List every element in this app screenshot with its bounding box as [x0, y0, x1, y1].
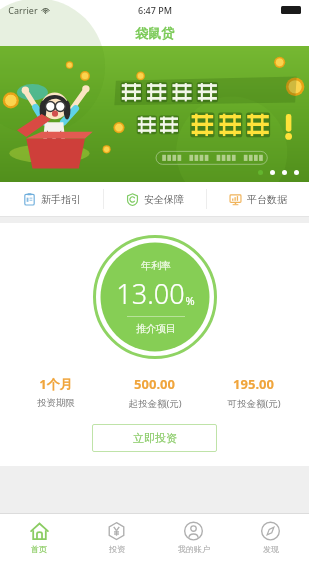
staticText: 500.00 — [134, 375, 175, 393]
staticText: % — [185, 293, 195, 308]
staticText: 我的账户 — [178, 544, 210, 554]
button[interactable]: 发现 — [232, 521, 309, 554]
button[interactable]: 平台数据 — [207, 182, 309, 216]
staticText: 6:47 PM — [138, 4, 172, 16]
button[interactable]: 1个月 — [6, 375, 105, 409]
button[interactable]: 立即投资 — [92, 424, 217, 452]
staticText: 195.00 — [233, 375, 274, 393]
staticText: 首页 — [31, 544, 47, 554]
button[interactable]: 500.00 — [105, 375, 204, 410]
button[interactable]: 195.00 — [204, 375, 303, 410]
staticText: 年利率 — [141, 259, 171, 272]
button[interactable]: 投资 — [78, 521, 155, 554]
button[interactable]: 促销横幅 — [0, 46, 309, 182]
staticText: 袋鼠贷 — [135, 25, 174, 41]
button[interactable]: 新手指引 — [0, 182, 103, 216]
staticText: 投资期限 — [37, 397, 75, 409]
staticText: 13.00 — [116, 275, 185, 312]
button[interactable]: 年利率 — [93, 235, 217, 359]
staticText: 立即投资 — [133, 431, 177, 445]
staticText: 新手指引 — [41, 193, 81, 206]
staticText: 1个月 — [39, 375, 73, 393]
button[interactable]: 安全保障 — [104, 182, 206, 216]
staticText: 可投金额(元) — [227, 397, 281, 410]
button[interactable]: 我的账户 — [155, 521, 232, 554]
staticText: 安全保障 — [144, 193, 184, 206]
button[interactable]: 首页 — [0, 521, 78, 554]
staticText: 推介项目 — [136, 322, 176, 335]
staticText: 发现 — [263, 544, 279, 554]
staticText: 平台数据 — [247, 193, 287, 206]
staticText: 投资 — [109, 544, 125, 554]
staticText: Carrier — [8, 4, 38, 16]
staticText: 起投金额(元) — [128, 397, 182, 410]
